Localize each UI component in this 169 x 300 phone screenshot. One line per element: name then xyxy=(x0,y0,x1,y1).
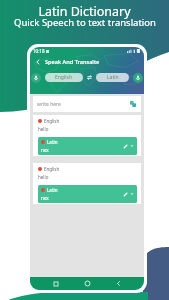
staticText: Latin xyxy=(47,187,58,193)
button[interactable]: Edit xyxy=(121,190,129,198)
staticText: Latin xyxy=(107,74,119,81)
staticText: nex xyxy=(41,147,49,153)
staticText: hello xyxy=(38,174,49,180)
button[interactable]: write here xyxy=(33,96,141,112)
button[interactable]: Swap languages xyxy=(86,74,93,81)
button[interactable]: English xyxy=(33,163,141,204)
staticText: hello xyxy=(38,126,49,132)
staticText: English xyxy=(44,118,60,124)
button[interactable]: Back xyxy=(113,278,124,289)
button[interactable]: English xyxy=(45,73,83,82)
staticText: nex xyxy=(41,195,49,201)
button[interactable]: Home xyxy=(82,278,93,289)
button[interactable]: Latin xyxy=(38,137,137,155)
button[interactable]: Recents xyxy=(50,278,61,289)
staticText: Latin Dictionary xyxy=(38,3,131,20)
button[interactable]: Microphone xyxy=(31,73,41,83)
button[interactable]: Edit xyxy=(121,142,129,150)
button[interactable]: More xyxy=(129,191,135,197)
button[interactable]: Latin xyxy=(96,73,129,82)
staticText: write here xyxy=(37,101,61,108)
staticText: 10:18 xyxy=(33,48,45,54)
staticText: Speak And Transalte xyxy=(45,58,100,66)
staticText: English xyxy=(44,166,60,172)
staticText: Latin xyxy=(47,139,58,145)
button[interactable]: English xyxy=(33,115,141,156)
button[interactable]: Microphone xyxy=(133,73,143,83)
button[interactable]: More xyxy=(129,143,135,149)
button[interactable]: Back xyxy=(32,56,43,67)
button[interactable]: Translate xyxy=(129,100,137,108)
staticText: Quick Speech to text translation xyxy=(14,16,156,29)
button[interactable]: Latin xyxy=(38,185,137,203)
staticText: English xyxy=(55,74,73,81)
